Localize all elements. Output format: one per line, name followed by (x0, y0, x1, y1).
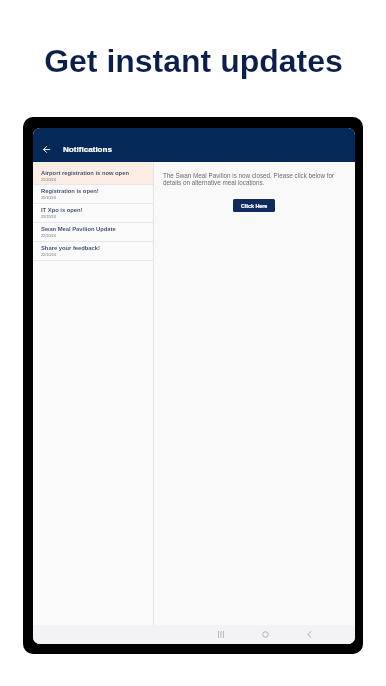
button[interactable]: Recents (199, 625, 243, 644)
staticText: 22/10/24 (41, 253, 56, 257)
staticText: 22/10/24 (41, 234, 56, 238)
staticText: The Swan Meal Pavilion is now closed. Pl… (163, 172, 344, 186)
staticText: Airport registration is now open (41, 170, 129, 176)
button[interactable]: Click Here (233, 199, 275, 212)
staticText: Get instant updates (44, 43, 343, 79)
staticText: 25/10/24 (41, 178, 56, 182)
button[interactable]: Share your feedback! (33, 242, 153, 261)
staticText: 25/10/24 (41, 215, 56, 219)
button[interactable]: IT Xpo is open! (33, 204, 153, 223)
staticText: Click Here (241, 203, 268, 209)
button[interactable]: Home (243, 625, 287, 644)
staticText: 25/10/24 (41, 196, 56, 200)
button[interactable]: Registration is open! (33, 185, 153, 204)
staticText: Share your feedback! (41, 245, 100, 251)
staticText: Swan Meal Pavilion Update (41, 226, 116, 232)
button[interactable]: Airport registration is now open (33, 162, 153, 185)
button[interactable]: Back (287, 625, 331, 644)
button[interactable]: Back (38, 141, 55, 158)
staticText: Registration is open! (41, 188, 99, 194)
staticText: IT Xpo is open! (41, 207, 83, 213)
button[interactable]: Swan Meal Pavilion Update (33, 223, 153, 242)
staticText: Notifications (63, 145, 113, 154)
